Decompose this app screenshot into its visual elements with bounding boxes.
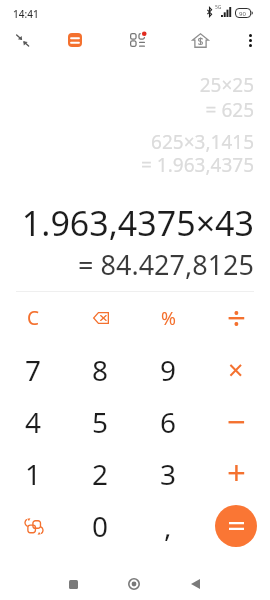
button[interactable]: Unit converter xyxy=(125,28,149,52)
button[interactable]: , xyxy=(134,500,202,552)
button[interactable]: 8 xyxy=(67,344,134,396)
staticText: ÷ xyxy=(227,295,246,340)
button[interactable]: Loan calculator xyxy=(188,28,212,52)
button[interactable]: Equals xyxy=(215,505,257,547)
staticText: × xyxy=(228,351,244,388)
button[interactable]: Back xyxy=(178,567,212,600)
staticText: 6 xyxy=(160,403,177,441)
staticText: − xyxy=(227,399,246,444)
button[interactable]: C xyxy=(0,292,67,344)
staticText: 5 xyxy=(92,403,109,441)
staticText: 90 xyxy=(239,10,246,18)
button[interactable]: 6 xyxy=(134,396,202,448)
staticText: 5G xyxy=(215,4,222,11)
staticText: 14:41 xyxy=(13,7,39,21)
button[interactable]: 7 xyxy=(0,344,67,396)
button[interactable]: 0 xyxy=(67,500,134,552)
staticText: C xyxy=(27,305,40,331)
staticText: 7 xyxy=(25,351,42,389)
button[interactable]: More options xyxy=(238,28,262,52)
staticText: = 1.963,4375 xyxy=(141,152,254,178)
staticText: 1.963,4375×43 xyxy=(21,200,254,246)
button[interactable]: Home xyxy=(117,567,151,600)
button[interactable]: 9 xyxy=(134,344,202,396)
button[interactable]: % xyxy=(134,292,202,344)
button[interactable]: 3 xyxy=(134,448,202,500)
staticText: 1 xyxy=(25,455,42,493)
staticText: 4 xyxy=(25,403,42,441)
staticText: = 84.427,8125 xyxy=(78,246,254,283)
button[interactable]: Backspace xyxy=(67,292,134,344)
button[interactable]: 4 xyxy=(0,396,67,448)
button[interactable]: ÷ xyxy=(202,292,270,344)
button[interactable]: 1 xyxy=(0,448,67,500)
button[interactable]: Convert units xyxy=(0,500,67,552)
button[interactable]: Recent apps xyxy=(56,567,90,600)
button[interactable]: Collapse xyxy=(10,28,34,52)
staticText: 25×25 xyxy=(199,72,254,98)
staticText: 3 xyxy=(160,455,177,493)
button[interactable]: 5 xyxy=(67,396,134,448)
button[interactable]: × xyxy=(202,344,270,396)
staticText: , xyxy=(164,507,172,545)
staticText: 0 xyxy=(92,507,109,545)
button[interactable]: − xyxy=(202,396,270,448)
button[interactable]: 2 xyxy=(67,448,134,500)
staticText: 9 xyxy=(160,351,177,389)
button[interactable]: Scientific mode xyxy=(63,28,87,52)
staticText: 8 xyxy=(92,351,109,389)
staticText: + xyxy=(227,450,246,495)
staticText: 625×3,1415 xyxy=(151,129,254,155)
staticText: 2 xyxy=(92,455,109,493)
button[interactable]: + xyxy=(202,448,270,500)
staticText: = 625 xyxy=(205,97,254,123)
staticText: % xyxy=(161,306,176,331)
